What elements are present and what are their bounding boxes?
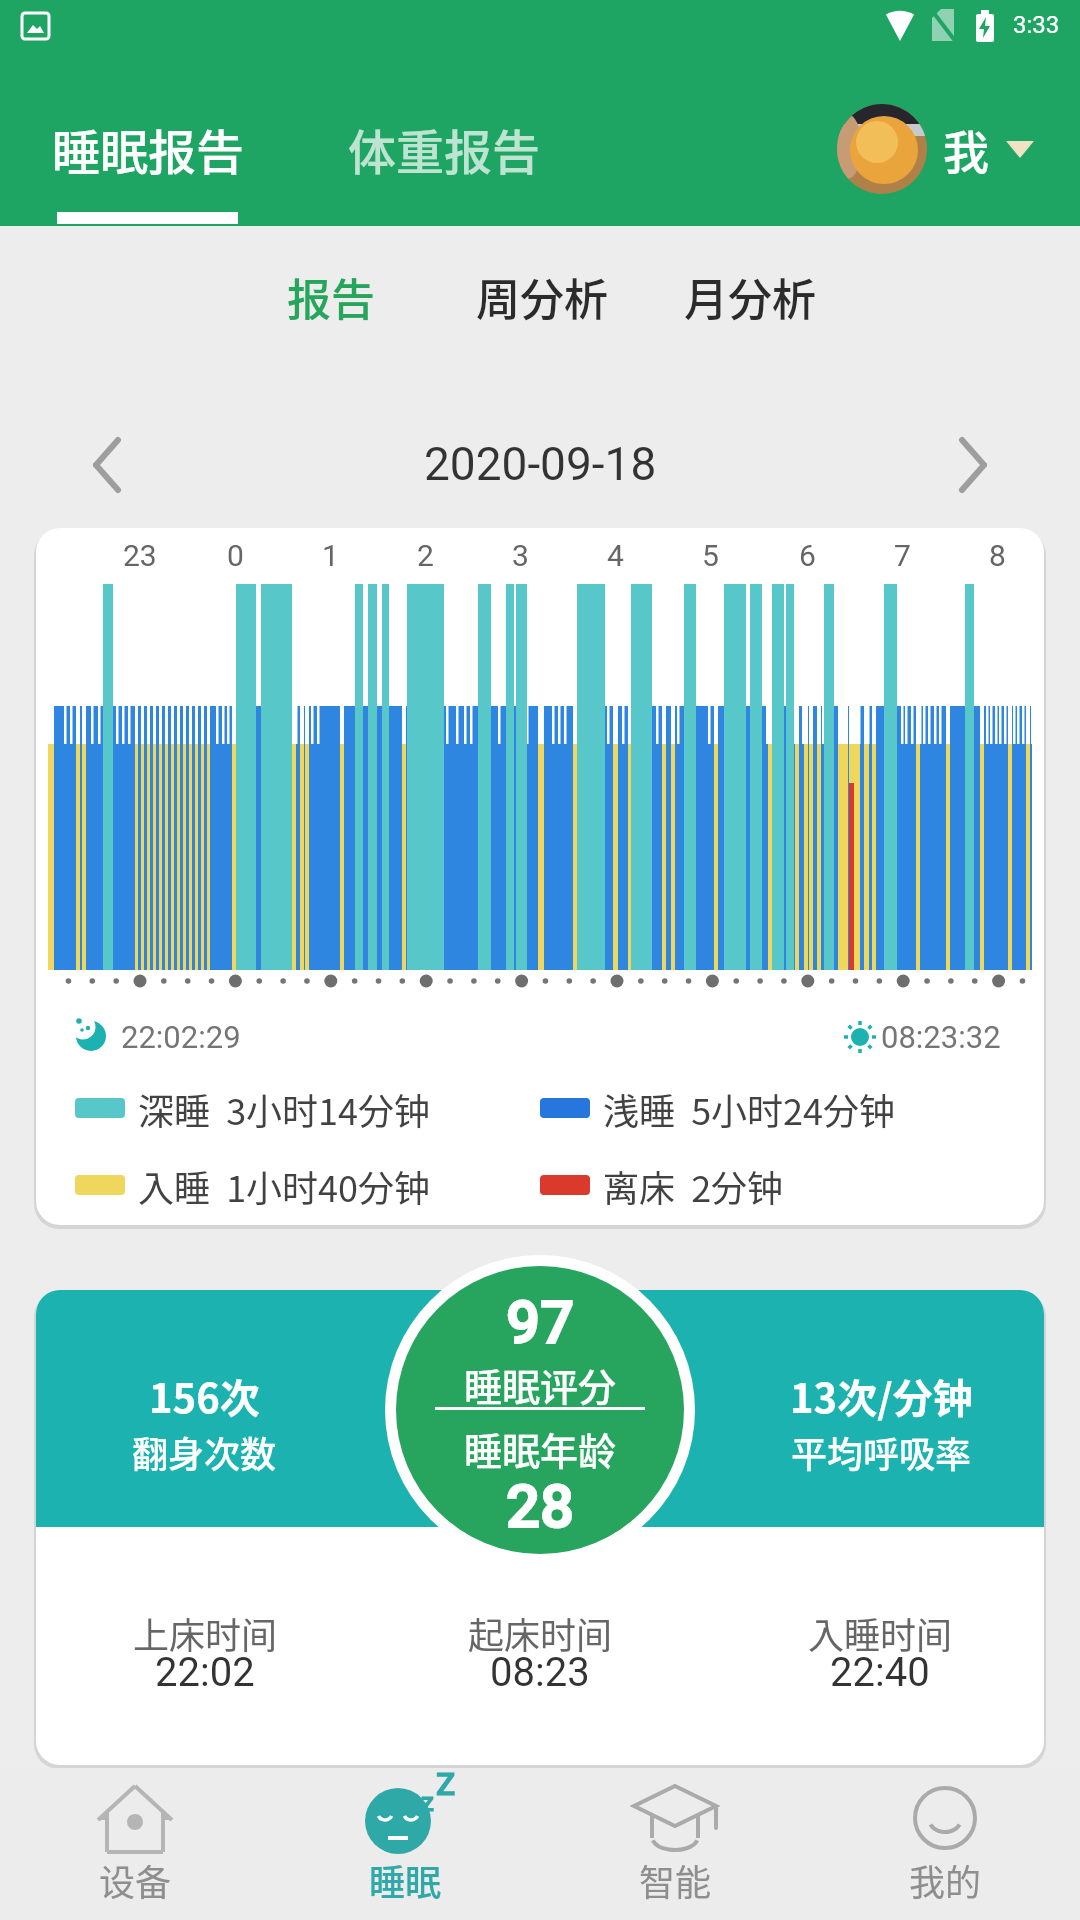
staticText: 我 [943,116,989,183]
staticText: 97 [506,1287,575,1357]
staticText: 08:23 [490,1649,590,1696]
staticText: 6 [799,538,816,573]
staticText: 睡眠报告 [52,114,245,184]
staticText: 周分析 [476,265,608,329]
staticText: 上床时间 [133,1607,278,1659]
staticText: 深睡 3小时14分钟 [138,1083,431,1133]
staticText: 3:33 [1013,11,1060,39]
button[interactable]: 体重报告 [314,114,574,184]
staticText: 2020-09-18 [424,437,657,491]
button[interactable] [90,435,130,495]
staticText: 入睡 1小时40分钟 [138,1160,431,1210]
button[interactable]: 周分析 [432,262,652,332]
staticText: 翻身次数 [132,1426,277,1478]
staticText: 浅睡 5小时24分钟 [603,1083,896,1133]
staticText: z [421,1787,435,1817]
button[interactable]: 睡眠报告 [18,114,278,184]
button[interactable]: 月分析 [640,262,860,332]
staticText: 入睡时间 [808,1607,953,1659]
staticText: 2 [417,538,434,573]
staticText: 睡眠 [369,1854,442,1906]
button[interactable]: 我的 [810,1768,1080,1920]
staticText: 设备 [99,1854,172,1906]
staticText: 22:02:29 [121,1019,241,1055]
staticText: 1 [322,538,339,573]
staticText: 睡眠评分 [464,1357,617,1412]
staticText: 离床 2分钟 [603,1160,784,1210]
staticText: 22:40 [830,1649,930,1696]
staticText: 13次/分钟 [790,1367,973,1425]
staticText: 我的 [909,1854,982,1906]
staticText: 报告 [287,265,375,329]
staticText: 月分析 [684,265,816,329]
button[interactable]: z [270,1768,540,1920]
staticText: 7 [894,538,911,573]
staticText: 156次 [149,1367,260,1425]
button[interactable]: 报告 [231,262,431,332]
staticText: 28 [506,1471,575,1541]
staticText: 3 [512,538,529,573]
staticText: 22:02 [155,1649,255,1696]
staticText: 8 [989,538,1006,573]
staticText: 5 [702,538,719,573]
button[interactable] [950,435,990,495]
button[interactable]: 设备 [0,1768,270,1920]
staticText: 0 [227,538,244,573]
button[interactable]: 智能 [540,1768,810,1920]
staticText: 起床时间 [468,1607,613,1659]
staticText: 体重报告 [348,114,541,184]
staticText: 智能 [639,1854,712,1906]
staticText: 08:23:32 [881,1019,1001,1055]
staticText: 平均呼吸率 [791,1426,972,1478]
staticText: 睡眠年龄 [464,1421,617,1476]
staticText: 23 [123,538,157,573]
button[interactable] [820,95,1060,205]
staticText: 4 [607,538,624,573]
staticText: Z [436,1765,456,1803]
